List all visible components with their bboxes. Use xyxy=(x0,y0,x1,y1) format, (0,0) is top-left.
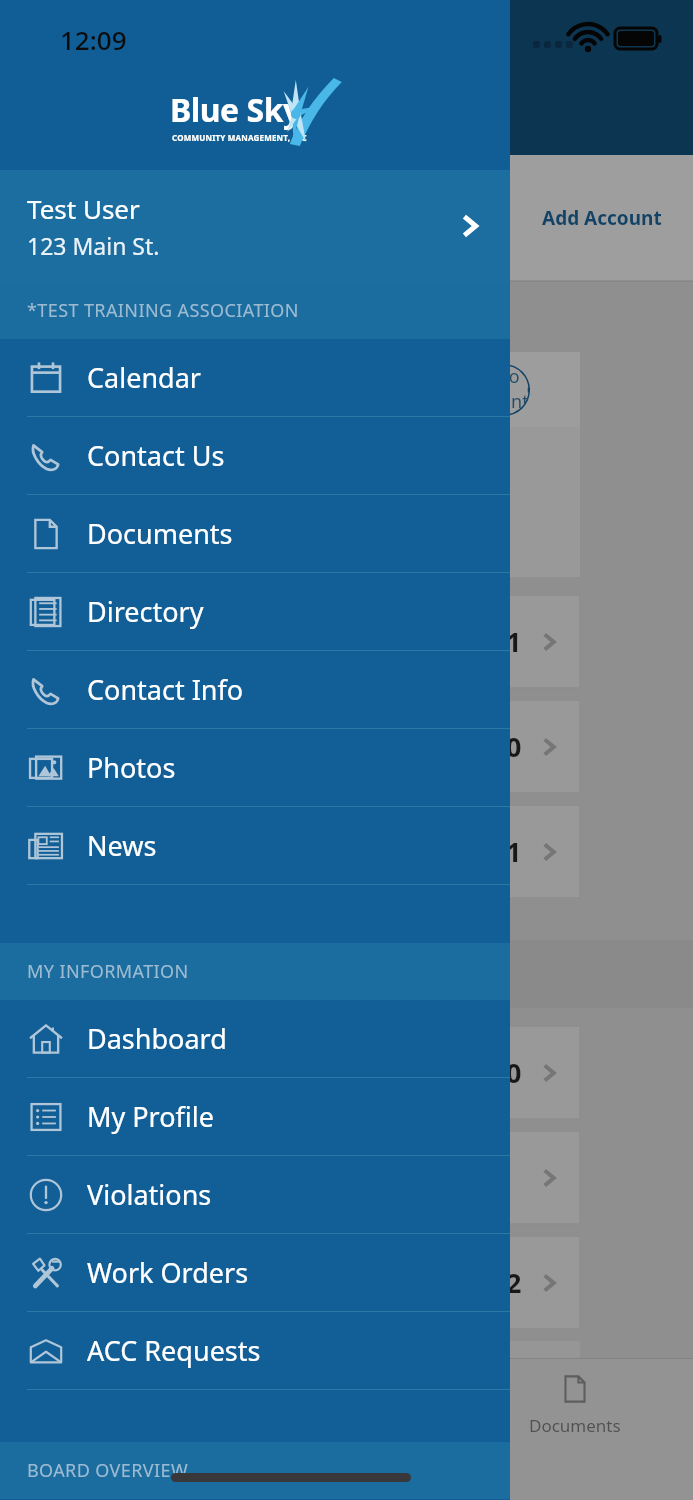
button[interactable]: Calendar xyxy=(0,339,510,416)
staticText: ACC Requests xyxy=(87,1332,261,1369)
button[interactable]: 0 xyxy=(340,700,580,793)
button[interactable]: Documents xyxy=(520,1372,630,1437)
staticText: 0 xyxy=(506,1054,522,1091)
button[interactable]: Contact Us xyxy=(0,417,510,494)
button[interactable] xyxy=(340,1131,580,1224)
button[interactable]: News xyxy=(0,807,510,884)
button[interactable]: Photos xyxy=(0,729,510,806)
staticText: Blue Sky xyxy=(170,88,301,132)
button[interactable]: 1 xyxy=(340,595,580,688)
staticText: BOARD OVERVIEW xyxy=(27,1458,189,1483)
staticText: Dashboard xyxy=(87,1020,227,1057)
staticText: Test User xyxy=(27,191,140,226)
staticText: 12:09 xyxy=(60,22,127,57)
button[interactable]: Work Orders xyxy=(0,1234,510,1311)
staticText: Calendar xyxy=(87,359,201,396)
button[interactable]: Violations xyxy=(0,1156,510,1233)
staticText: Work Orders xyxy=(87,1254,249,1291)
staticText: COMMUNITY MANAGEMENT, LLC xyxy=(172,132,307,143)
button[interactable]: My Profile xyxy=(0,1078,510,1155)
button[interactable]: Contact Info xyxy=(0,651,510,728)
staticText: 2 xyxy=(506,1264,522,1301)
staticText: Photos xyxy=(87,749,176,786)
staticText: count Info xyxy=(500,364,530,416)
button[interactable]: count Info xyxy=(330,364,530,416)
staticText: Directory xyxy=(87,593,204,630)
staticText: Violations xyxy=(87,1176,212,1213)
staticText: 1 xyxy=(506,833,522,870)
button[interactable]: Dashboard xyxy=(0,1000,510,1077)
button[interactable]: 0 xyxy=(340,1026,580,1119)
staticText: 0 xyxy=(506,728,522,765)
staticText: Contact Us xyxy=(87,437,225,474)
staticText: 123 Main St. xyxy=(27,230,160,261)
button[interactable]: 1 xyxy=(340,805,580,898)
staticText: 1 xyxy=(506,623,522,660)
staticText: Contact Info xyxy=(87,671,244,708)
staticText: MY INFORMATION xyxy=(27,959,189,984)
button[interactable]: Test User xyxy=(0,170,510,282)
button[interactable]: 2 xyxy=(340,1236,580,1329)
staticText: My Profile xyxy=(87,1098,215,1135)
button[interactable]: Add Account xyxy=(0,155,693,280)
staticText: *TEST TRAINING ASSOCIATION xyxy=(27,298,299,323)
button[interactable]: Documents xyxy=(0,495,510,572)
button[interactable]: Directory xyxy=(0,573,510,650)
staticText: Documents xyxy=(87,515,233,552)
button[interactable]: ACC Requests xyxy=(0,1312,510,1389)
staticText: Add Account xyxy=(542,205,662,231)
staticText: Documents xyxy=(529,1414,621,1437)
staticText: News xyxy=(87,827,157,864)
